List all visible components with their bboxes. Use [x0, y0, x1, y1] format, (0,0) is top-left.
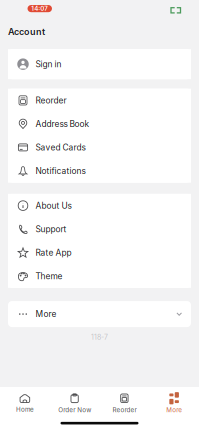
staticText: About Us [36, 200, 72, 211]
button[interactable]: Home [0, 394, 50, 413]
button[interactable]: About Us [8, 194, 191, 217]
button[interactable]: More [8, 301, 191, 327]
staticText: Support [36, 224, 67, 234]
button[interactable]: More [149, 393, 199, 414]
staticText: Sign in [36, 59, 62, 69]
button[interactable]: Theme [8, 264, 191, 288]
staticText: Notifications [36, 166, 86, 176]
staticText: Saved Cards [36, 142, 86, 152]
staticText: Reorder [36, 95, 67, 105]
staticText: More [166, 406, 182, 414]
staticText: Address Book [36, 119, 90, 129]
button[interactable]: Reorder [99, 394, 149, 414]
staticText: Home [16, 406, 34, 413]
button[interactable]: Notifications [8, 159, 191, 183]
staticText: Rate App [36, 247, 72, 258]
staticText: Reorder [112, 406, 136, 414]
button[interactable]: Reorder [8, 89, 191, 112]
staticText: More [36, 309, 57, 319]
button[interactable]: Sign in [8, 49, 191, 79]
staticText: 118-7 [91, 333, 108, 341]
button[interactable]: Order Now [50, 393, 100, 414]
button[interactable]: Rate App [8, 241, 191, 264]
staticText: 14:07 [31, 5, 48, 12]
button[interactable]: Address Book [8, 112, 191, 136]
staticText: Theme [36, 271, 63, 281]
staticText: Account [8, 26, 45, 37]
button[interactable]: Support [8, 217, 191, 241]
button[interactable]: Saved Cards [8, 136, 191, 159]
staticText: Order Now [58, 406, 91, 414]
